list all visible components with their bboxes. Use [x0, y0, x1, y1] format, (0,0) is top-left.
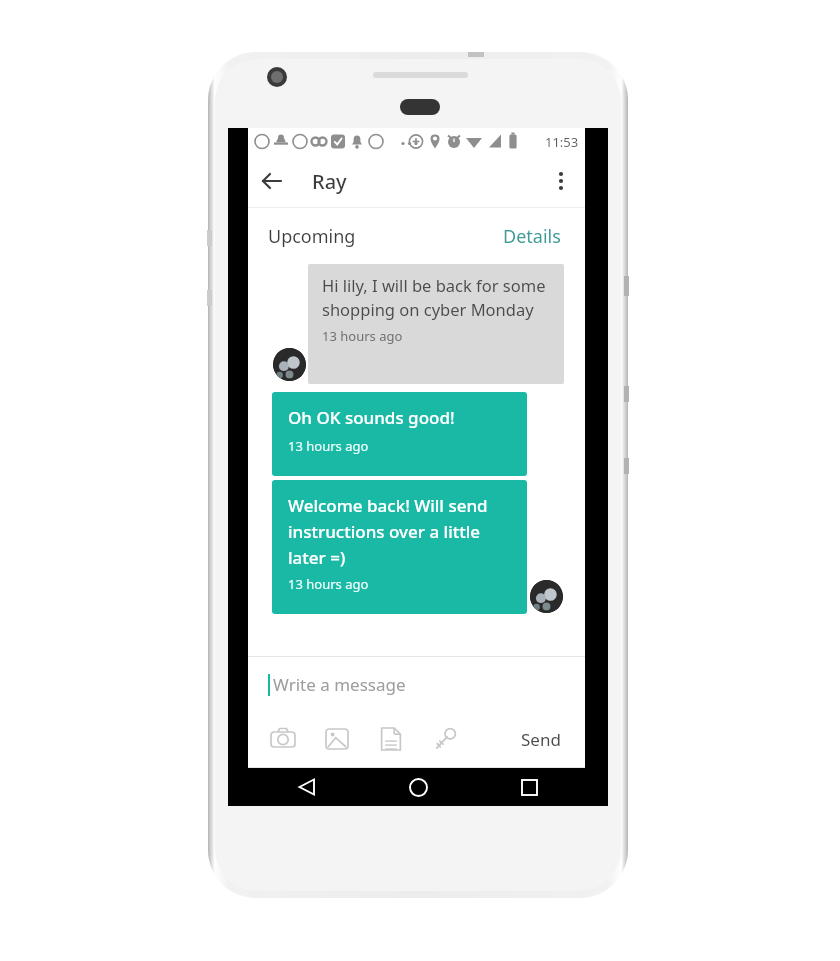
staticText: Send: [521, 728, 561, 751]
staticText: 13 hours ago: [288, 575, 369, 593]
button[interactable]: Write a message: [248, 657, 585, 711]
button[interactable]: More options: [537, 157, 585, 205]
button[interactable]: Photo: [320, 722, 354, 756]
button[interactable]: Back: [284, 768, 330, 806]
button[interactable]: Send: [515, 722, 567, 757]
button[interactable]: Oh OK sounds good!: [272, 392, 527, 476]
button[interactable]: Hi lily, I will be back for some shoppin…: [308, 264, 564, 384]
staticText: Welcome back! Will send instructions ove…: [288, 494, 515, 569]
button[interactable]: Recents: [506, 768, 552, 806]
staticText: Hi lily, I will be back for some shoppin…: [322, 274, 552, 321]
staticText: Write a message: [273, 673, 406, 696]
button[interactable]: Camera: [266, 722, 300, 756]
button[interactable]: Document: [374, 722, 408, 756]
button[interactable]: Details: [499, 220, 565, 253]
button[interactable]: Home: [395, 768, 441, 806]
button[interactable]: Welcome back! Will send instructions ove…: [272, 480, 527, 614]
staticText: 13 hours ago: [322, 327, 403, 345]
staticText: 13 hours ago: [288, 437, 369, 455]
staticText: Details: [503, 224, 561, 249]
staticText: Ray: [312, 168, 347, 195]
staticText: 11:53: [545, 133, 579, 151]
staticText: Upcoming: [268, 224, 356, 249]
button[interactable]: Back: [248, 157, 296, 205]
button[interactable]: Key: [428, 722, 462, 756]
staticText: Oh OK sounds good!: [288, 406, 455, 429]
